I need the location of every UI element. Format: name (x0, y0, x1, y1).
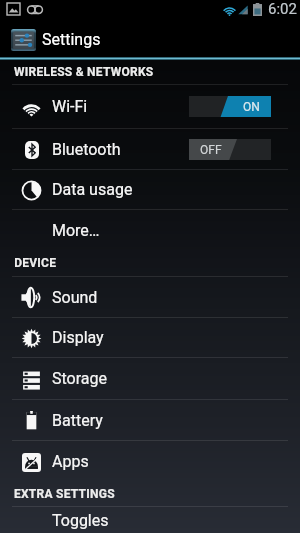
staticText: Bluetooth (52, 140, 121, 159)
staticText: Wi-Fi (52, 97, 88, 116)
button[interactable]: Toggles (0, 507, 300, 533)
button[interactable]: Apps (0, 441, 300, 482)
staticText: More… (52, 221, 100, 240)
button[interactable]: Bluetooth (0, 129, 300, 169)
button[interactable]: Battery (0, 400, 300, 440)
staticText: 6:02 (268, 0, 297, 18)
staticText: Apps (52, 452, 89, 471)
staticText: Toggles (52, 511, 109, 530)
staticText: DEVICE (14, 256, 56, 270)
staticText: Storage (52, 369, 107, 388)
staticText: OFF (200, 143, 222, 157)
button[interactable]: Wi-Fi (0, 85, 300, 128)
button[interactable]: Data usage (0, 170, 300, 209)
button[interactable]: Settings (0, 22, 300, 57)
staticText: WIRELESS & NETWORKS (14, 65, 154, 79)
button[interactable]: Sound (0, 277, 300, 317)
staticText: Settings (42, 30, 101, 49)
button[interactable]: Wi-Fi on (189, 96, 271, 117)
staticText: ON (243, 100, 260, 114)
staticText: EXTRA SETTINGS (14, 487, 115, 501)
button[interactable]: Bluetooth off (189, 139, 271, 160)
button[interactable]: More… (0, 210, 300, 250)
staticText: Display (52, 328, 104, 347)
button[interactable]: Storage (0, 358, 300, 399)
staticText: Data usage (52, 180, 133, 199)
button[interactable]: Display (0, 318, 300, 357)
staticText: Battery (52, 411, 103, 430)
staticText: Sound (52, 288, 98, 307)
